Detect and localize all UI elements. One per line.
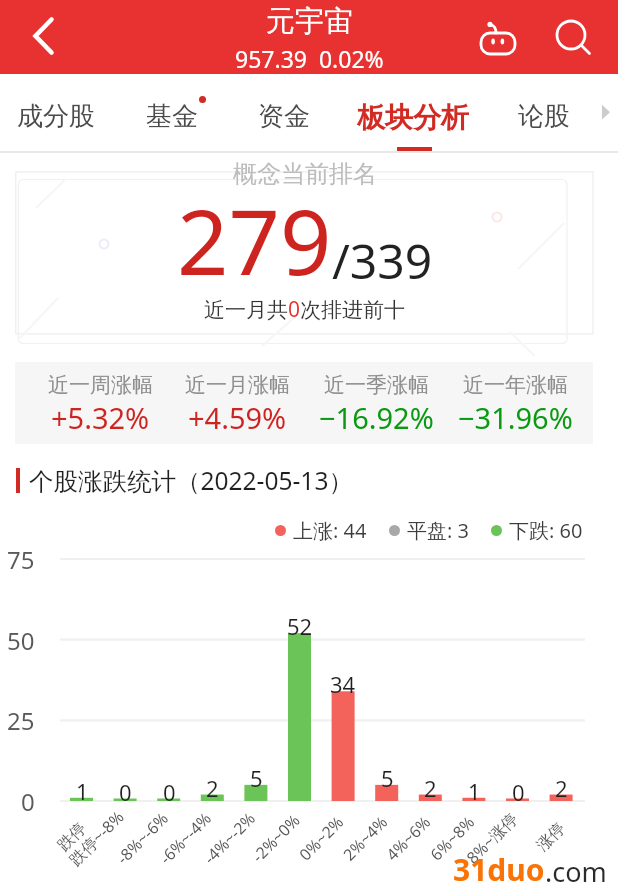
- button[interactable]: More tabs: [590, 96, 618, 124]
- staticText: -4%~-2%: [199, 807, 260, 869]
- staticText: −16.92%: [319, 398, 434, 437]
- staticText: 5: [381, 763, 394, 793]
- button[interactable]: 成分股: [5, 74, 107, 151]
- staticText: 5: [250, 763, 263, 793]
- staticText: 2: [555, 773, 568, 803]
- button[interactable]: 近一月涨幅: [167, 362, 307, 444]
- staticText: 跌停~-8%: [64, 806, 129, 870]
- staticText: 0: [21, 785, 35, 818]
- staticText: 279: [177, 179, 332, 302]
- staticText: 论股: [518, 100, 570, 133]
- button[interactable]: 板块分析: [345, 74, 481, 151]
- staticText: 957.39 0.02%: [235, 43, 384, 74]
- staticText: 6%~8%: [425, 811, 480, 865]
- staticText: 52: [287, 611, 313, 641]
- button[interactable]: 近一年涨幅: [445, 362, 585, 444]
- staticText: 8%~涨停: [462, 808, 522, 868]
- staticText: 近一季涨幅: [324, 372, 429, 398]
- staticText: 0: [119, 777, 132, 807]
- staticText: 2: [424, 773, 437, 803]
- button[interactable]: Robot assistant: [470, 9, 526, 65]
- staticText: 资金: [258, 100, 310, 133]
- staticText: 75: [7, 543, 35, 576]
- staticText: 1: [76, 776, 89, 806]
- staticText: 34: [330, 669, 356, 699]
- staticText: 近一月涨幅: [185, 372, 290, 398]
- staticText: .com: [545, 853, 607, 890]
- staticText: 0%~2%: [294, 811, 349, 865]
- staticText: −31.96%: [458, 398, 573, 437]
- staticText: -2%~0%: [247, 809, 305, 867]
- staticText: 31duo: [453, 849, 545, 890]
- staticText: 上涨: 44: [293, 517, 367, 544]
- staticText: 近一月共0次排进前十: [204, 295, 406, 324]
- button[interactable]: 资金: [246, 74, 322, 151]
- staticText: 近一周涨幅: [48, 372, 153, 398]
- staticText: 近一年涨幅: [463, 372, 568, 398]
- staticText: +5.32%: [51, 398, 150, 437]
- button[interactable]: 论股: [506, 74, 582, 151]
- button[interactable]: 近一季涨幅: [306, 362, 446, 444]
- staticText: 个股涨跌统计（2022-05-13）: [29, 464, 353, 497]
- staticText: 下跌: 60: [509, 517, 583, 544]
- staticText: 跌停: [54, 819, 90, 855]
- staticText: 平盘: 3: [407, 517, 469, 544]
- staticText: 板块分析: [357, 100, 469, 135]
- button[interactable]: Search: [548, 9, 604, 65]
- staticText: -6%~-4%: [155, 807, 216, 869]
- button[interactable]: 基金: [134, 74, 210, 151]
- button[interactable]: Back: [0, 0, 80, 74]
- staticText: 涨停: [533, 819, 569, 855]
- staticText: 0: [163, 777, 176, 807]
- staticText: 4%~6%: [381, 811, 436, 865]
- button[interactable]: 近一周涨幅: [30, 362, 170, 444]
- staticText: 概念当前排名: [233, 159, 377, 189]
- staticText: 元宇宙: [266, 3, 353, 40]
- staticText: 50: [7, 624, 35, 657]
- staticText: 25: [7, 704, 35, 737]
- staticText: /339: [332, 228, 433, 293]
- staticText: 1: [468, 776, 481, 806]
- staticText: -8%~-6%: [112, 807, 173, 869]
- staticText: 0: [512, 777, 525, 807]
- staticText: 2%~4%: [338, 811, 393, 865]
- staticText: 成分股: [17, 100, 95, 133]
- staticText: 2: [206, 773, 219, 803]
- staticText: 基金: [146, 100, 198, 133]
- staticText: +4.59%: [188, 398, 287, 437]
